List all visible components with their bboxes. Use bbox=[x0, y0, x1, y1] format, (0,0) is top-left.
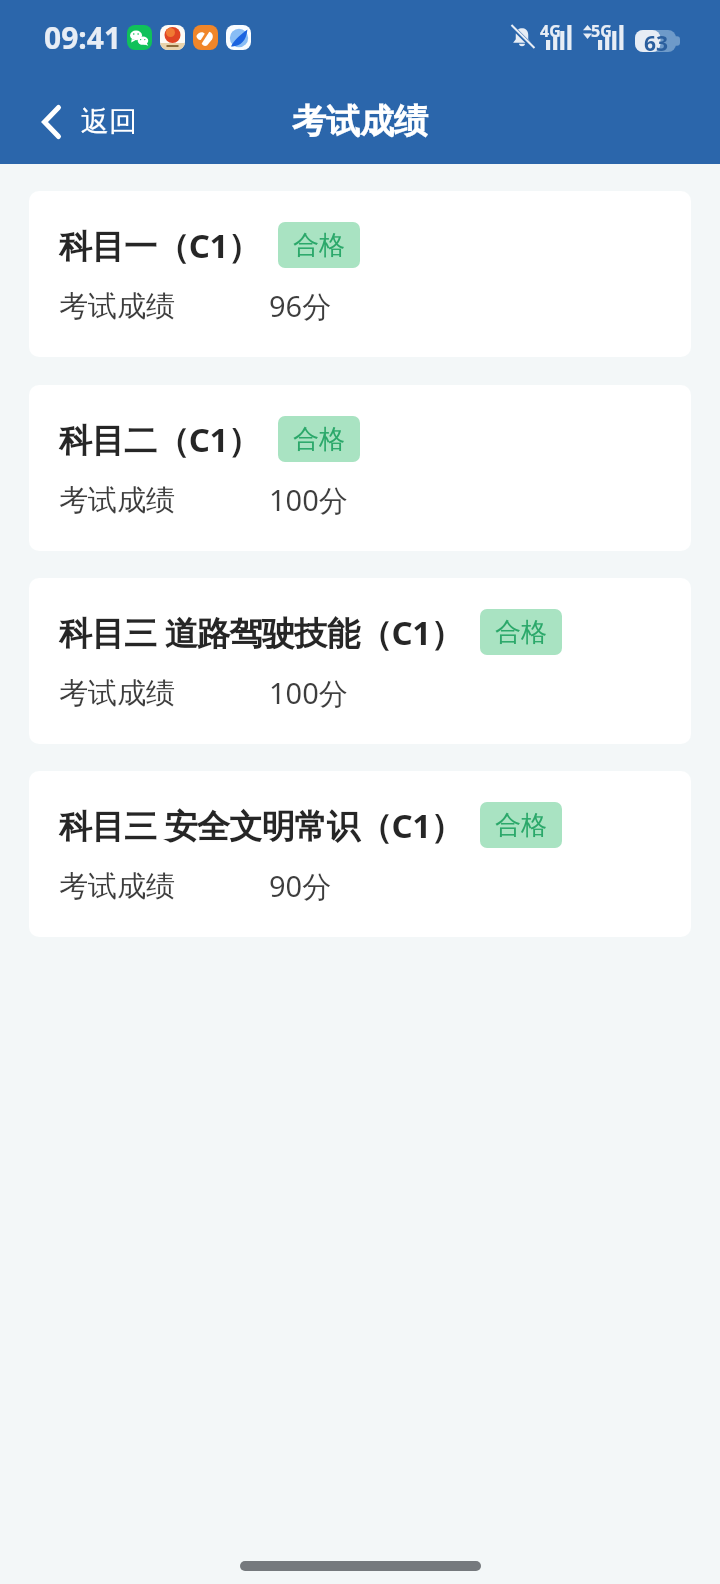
button[interactable]: 返回 bbox=[0, 74, 161, 164]
staticText: 合格 bbox=[293, 229, 345, 262]
staticText: 合格 bbox=[495, 616, 547, 649]
staticText: 96分 bbox=[269, 286, 332, 326]
button[interactable]: 科目一（C1） bbox=[29, 191, 691, 357]
staticText: 100分 bbox=[269, 673, 348, 713]
button[interactable]: 科目二（C1） bbox=[29, 385, 691, 551]
staticText: 科目二（C1） bbox=[59, 417, 261, 462]
staticText: 科目一（C1） bbox=[59, 223, 261, 268]
staticText: 科目三 道路驾驶技能（C1） bbox=[59, 610, 463, 655]
staticText: 考试成绩 bbox=[59, 868, 175, 905]
staticText: 返回 bbox=[81, 104, 137, 139]
button[interactable]: 科目三 道路驾驶技能（C1） bbox=[29, 578, 691, 744]
staticText: 合格 bbox=[293, 423, 345, 456]
staticText: 考试成绩 bbox=[59, 288, 175, 325]
staticText: 考试成绩 bbox=[59, 675, 175, 712]
staticText: 科目三 安全文明常识（C1） bbox=[59, 803, 463, 848]
staticText: 90分 bbox=[269, 866, 332, 906]
button[interactable]: 科目三 安全文明常识（C1） bbox=[29, 771, 691, 937]
staticText: 考试成绩 bbox=[59, 482, 175, 519]
staticText: 4G bbox=[540, 20, 561, 42]
staticText: 5G bbox=[591, 20, 612, 42]
staticText: 09:41 bbox=[44, 17, 122, 58]
other: 静音 bbox=[510, 25, 534, 49]
staticText: 100分 bbox=[269, 480, 348, 520]
staticText: 考试成绩 bbox=[292, 100, 428, 143]
staticText: 63 bbox=[644, 29, 669, 51]
staticText: 合格 bbox=[495, 809, 547, 842]
